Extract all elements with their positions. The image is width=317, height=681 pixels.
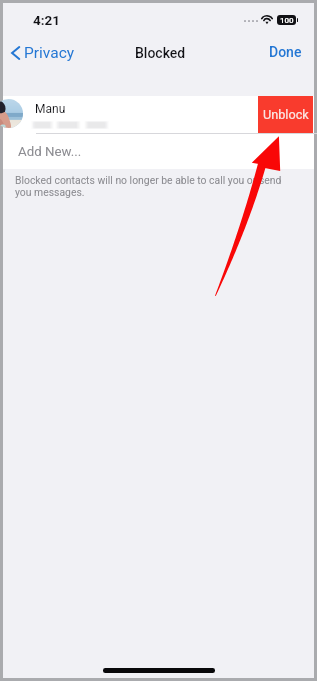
staticText: Unblock — [263, 107, 309, 122]
staticText: Done — [269, 44, 302, 60]
staticText: 100 — [280, 16, 294, 25]
staticText: Manu — [35, 102, 66, 116]
button[interactable]: Done — [264, 40, 307, 64]
staticText: Blocked contacts will no longer be able … — [15, 174, 282, 199]
button[interactable] — [3, 96, 314, 133]
staticText: Privacy — [24, 44, 75, 62]
button[interactable]: Privacy — [6, 40, 81, 66]
staticText: 4:21 — [33, 12, 61, 28]
button[interactable] — [3, 133, 314, 169]
staticText: Blocked — [135, 45, 186, 61]
staticText: Add New... — [18, 144, 82, 160]
button[interactable]: Unblock — [258, 96, 313, 133]
